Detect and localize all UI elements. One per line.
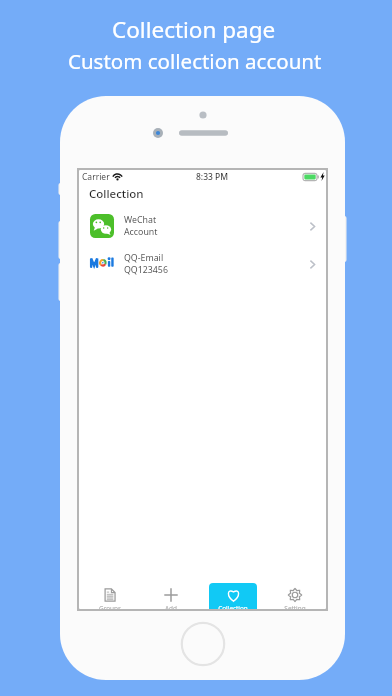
button[interactable]: Collection — [209, 583, 257, 609]
staticText: Collection page — [112, 14, 276, 45]
other: Setting — [288, 588, 302, 602]
other: Collection — [226, 588, 241, 602]
staticText: QQ123456 — [124, 264, 168, 276]
other: Groups — [103, 588, 117, 602]
staticText: Custom collection account — [68, 47, 322, 75]
staticText: Collection — [218, 604, 248, 609]
staticText: 8:33 PM — [196, 171, 229, 183]
staticText: Groups — [99, 604, 121, 609]
button[interactable]: Groups — [86, 583, 133, 609]
button[interactable]: Setting — [271, 583, 319, 609]
staticText: QQ-Email — [124, 252, 164, 264]
other: Add — [164, 588, 178, 602]
staticText: Carrier — [82, 171, 110, 183]
button[interactable]: QQ-Email — [79, 245, 326, 283]
button[interactable]: Add — [147, 583, 195, 609]
staticText: Collection — [89, 186, 144, 202]
staticText: WeChat — [124, 214, 157, 226]
staticText: Account — [124, 226, 158, 238]
staticText: Setting — [284, 604, 306, 609]
staticText: Add — [165, 604, 177, 609]
button[interactable]: WeChat — [79, 207, 326, 245]
